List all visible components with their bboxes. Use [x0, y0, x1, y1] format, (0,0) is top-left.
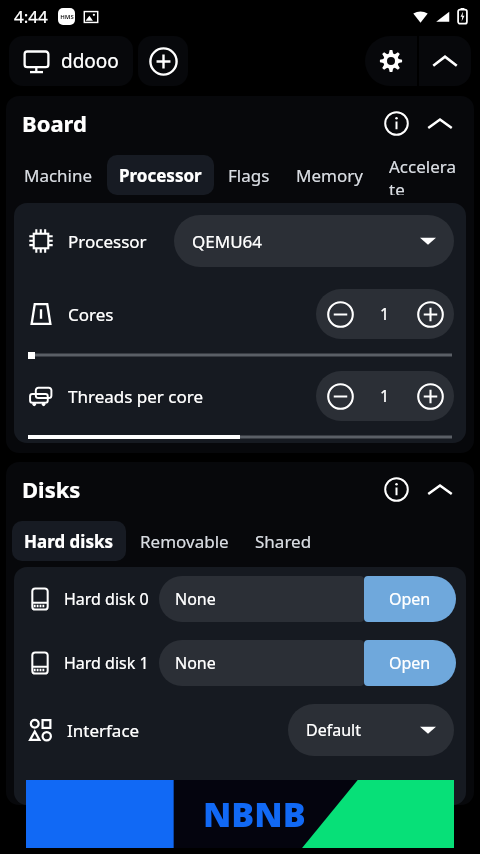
- button[interactable]: Collapse Board: [420, 103, 460, 143]
- staticText: Cores: [68, 303, 114, 326]
- staticText: None: [175, 588, 216, 610]
- staticText: None: [175, 652, 216, 674]
- staticText: 4:44: [14, 5, 48, 28]
- button[interactable]: Settings: [365, 36, 417, 86]
- button[interactable]: Machine: [12, 155, 105, 195]
- staticText: Memory: [296, 164, 363, 187]
- staticText: Hard disk 1: [64, 652, 149, 674]
- staticText: Processor: [68, 230, 147, 253]
- staticText: NBNB: [203, 791, 306, 837]
- button[interactable]: Add machine: [138, 36, 188, 86]
- button[interactable]: Decrease Threads per core: [316, 372, 364, 420]
- staticText: 1: [380, 385, 390, 407]
- staticText: Disks: [22, 474, 81, 504]
- staticText: Open: [389, 652, 431, 674]
- staticText: Accelerate: [389, 155, 462, 195]
- button[interactable]: Hard disks: [12, 521, 126, 561]
- staticText: Open: [389, 588, 431, 610]
- button[interactable]: Collapse Disks: [420, 469, 460, 509]
- button[interactable]: Memory: [284, 155, 375, 195]
- staticText: Flags: [228, 164, 270, 187]
- button[interactable]: [28, 349, 452, 361]
- staticText: Interface: [67, 719, 140, 742]
- staticText: Machine: [24, 164, 93, 187]
- staticText: Removable: [140, 530, 229, 553]
- button[interactable]: Board info: [376, 103, 416, 143]
- button[interactable]: NBNB: [26, 780, 454, 848]
- staticText: ddooo: [61, 48, 119, 74]
- button[interactable]: Shared: [243, 521, 324, 561]
- staticText: QEMU64: [192, 230, 263, 253]
- staticText: Hard disk 0: [64, 588, 149, 610]
- button[interactable]: Removable: [128, 521, 241, 561]
- button[interactable]: QEMU64: [174, 215, 454, 267]
- button[interactable]: ddooo: [9, 36, 133, 86]
- button[interactable]: None: [159, 640, 364, 686]
- button[interactable]: Processor: [107, 155, 214, 195]
- button[interactable]: Decrease Cores: [316, 290, 364, 338]
- staticText: Shared: [255, 530, 312, 553]
- staticText: Processor: [119, 164, 202, 187]
- button[interactable]: Increase Threads per core: [406, 372, 454, 420]
- button[interactable]: [28, 431, 452, 443]
- button[interactable]: Open: [364, 576, 456, 622]
- button[interactable]: Collapse: [419, 36, 471, 86]
- button[interactable]: Default: [288, 704, 454, 756]
- staticText: Hard disks: [24, 530, 114, 553]
- staticText: 1: [380, 303, 390, 325]
- staticText: Board: [22, 108, 87, 138]
- staticText: Threads per core: [68, 385, 203, 408]
- staticText: Default: [306, 719, 361, 741]
- staticText: HMS: [60, 13, 74, 21]
- button[interactable]: Increase Cores: [406, 290, 454, 338]
- button[interactable]: Accelerate: [377, 155, 474, 195]
- button[interactable]: None: [159, 576, 364, 622]
- button[interactable]: Flags: [216, 155, 282, 195]
- button[interactable]: Open: [364, 640, 456, 686]
- button[interactable]: Disks info: [376, 469, 416, 509]
